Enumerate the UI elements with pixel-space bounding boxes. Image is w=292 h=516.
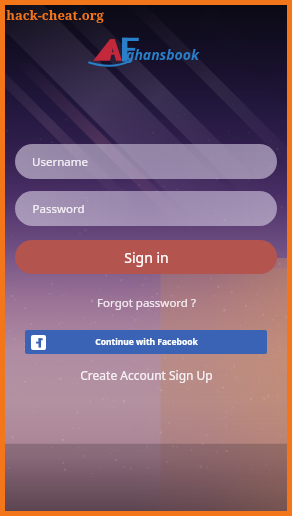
staticText: hack-cheat.org <box>6 6 104 24</box>
staticText: Username <box>32 154 88 170</box>
button[interactable]: Sign in <box>15 240 277 274</box>
staticText: Continue with Facebook <box>95 336 198 348</box>
button[interactable]: Continue with Facebook <box>25 330 267 354</box>
staticText: ghansbook <box>126 45 199 64</box>
staticText: Create Account Sign Up <box>80 367 213 383</box>
button[interactable]: Password <box>15 191 277 226</box>
other: Facebook <box>31 335 46 350</box>
staticText: Password <box>32 201 85 217</box>
button[interactable]: Username <box>15 144 277 179</box>
staticText: Sign in <box>124 248 169 267</box>
button[interactable]: Create Account Sign Up <box>0 367 292 383</box>
staticText: Forgot password ? <box>97 295 196 311</box>
button[interactable]: Forgot password ? <box>0 295 292 311</box>
